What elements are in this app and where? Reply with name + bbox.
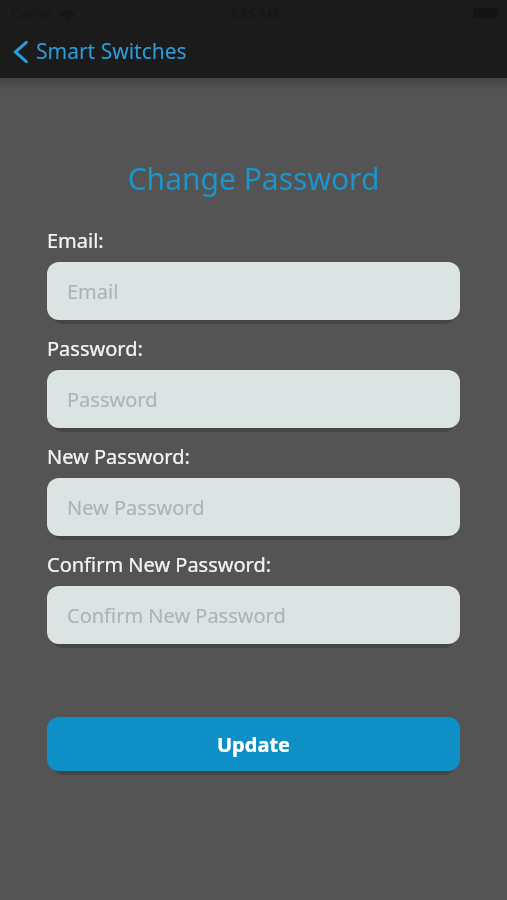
staticText: Password — [67, 386, 158, 413]
staticText: New Password: — [47, 443, 190, 470]
button[interactable]: Back — [0, 31, 199, 72]
staticText: Password: — [47, 335, 143, 362]
staticText: Smart Switches — [36, 37, 187, 66]
staticText: Email — [67, 278, 119, 305]
staticText: New Password — [67, 494, 205, 521]
staticText: Update — [217, 731, 290, 758]
button[interactable]: Password — [47, 370, 460, 428]
button[interactable]: Confirm New Password — [47, 586, 460, 644]
staticText: Confirm New Password: — [47, 551, 272, 578]
button[interactable]: Email — [47, 262, 460, 320]
staticText: Confirm New Password — [67, 602, 286, 629]
staticText: Change Password — [0, 158, 507, 199]
button[interactable]: Update — [47, 717, 460, 771]
button[interactable]: New Password — [47, 478, 460, 536]
other: Back — [14, 41, 28, 63]
staticText: Email: — [47, 227, 104, 254]
